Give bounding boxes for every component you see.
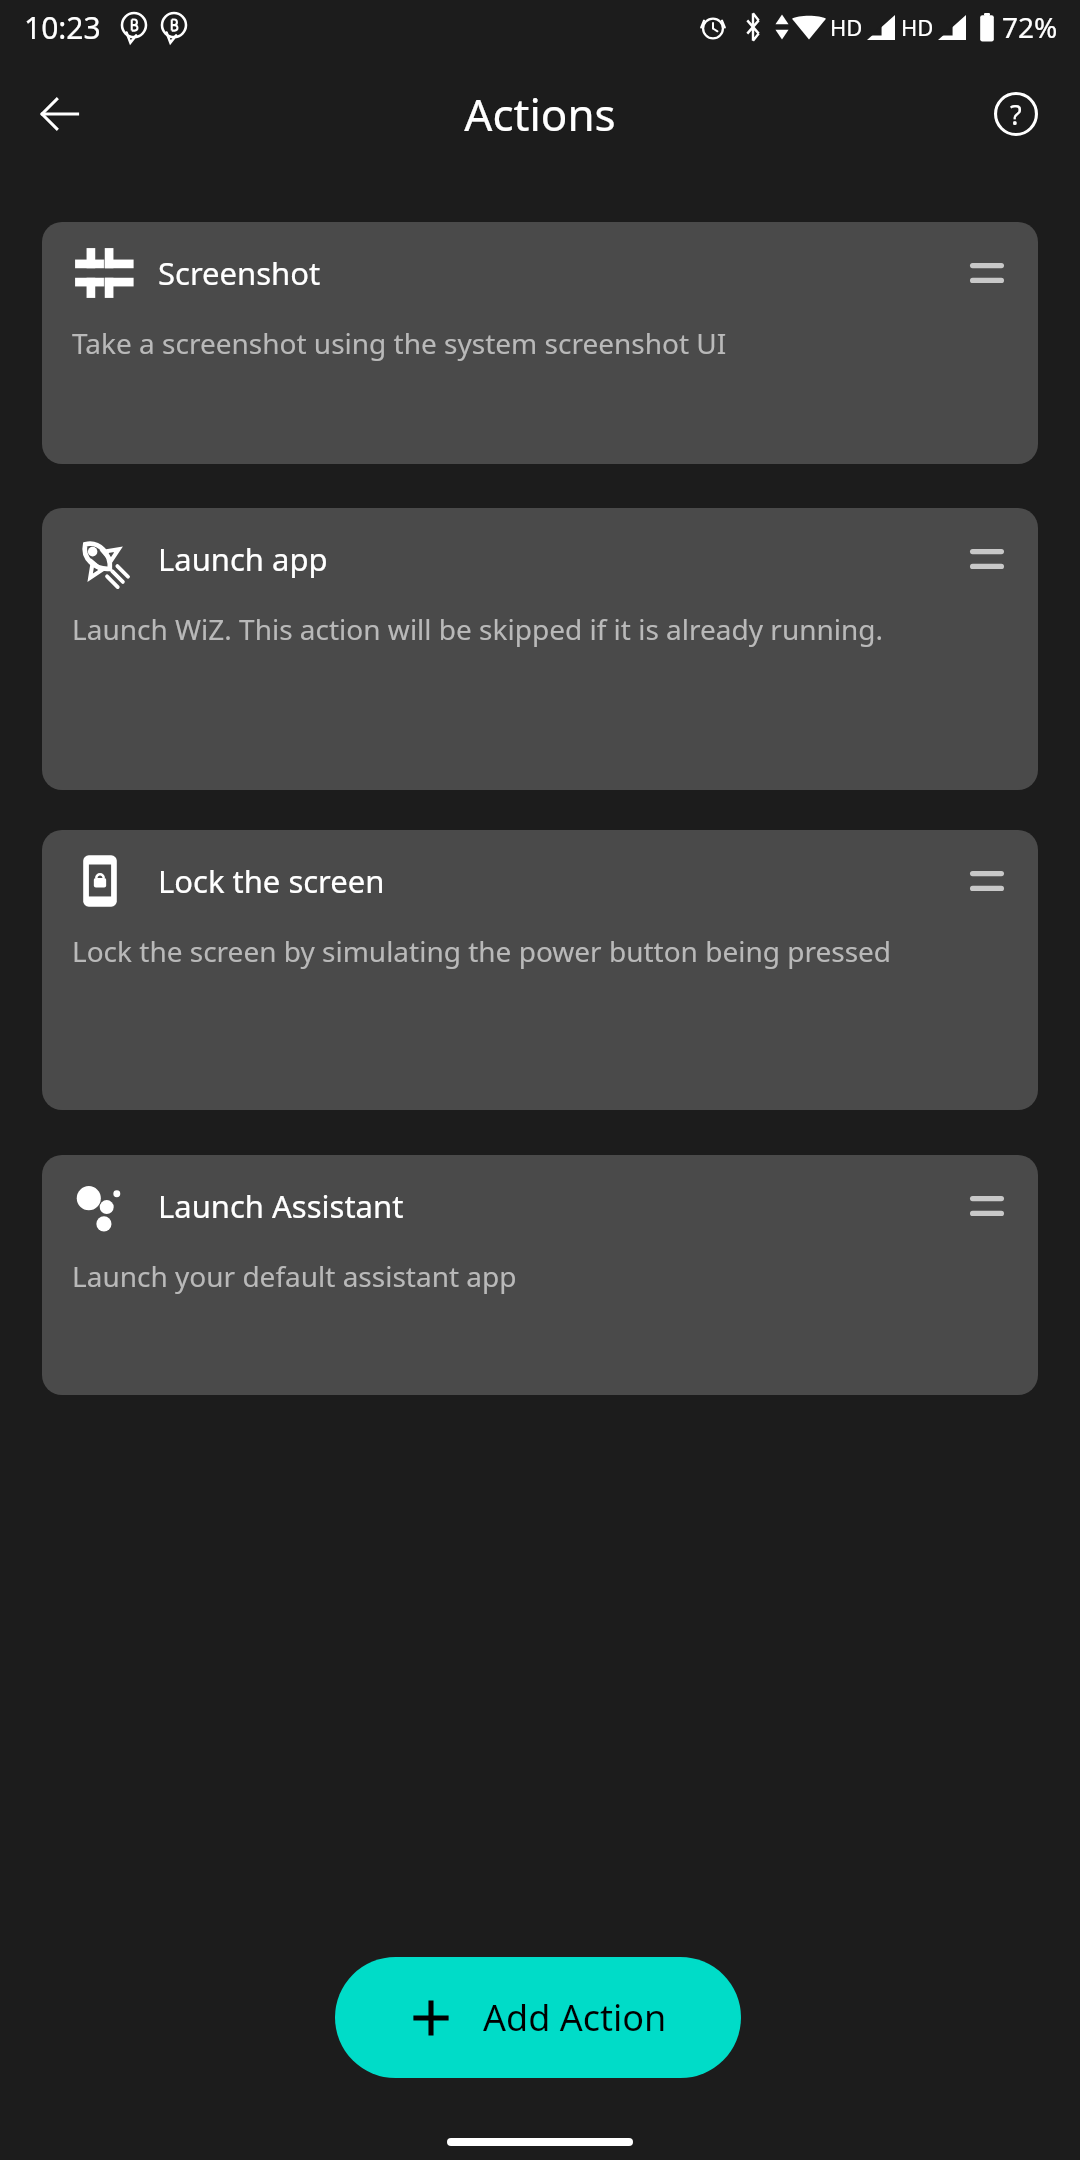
button[interactable]: Reorder Launch app [964,536,1010,582]
button[interactable]: Reorder Screenshot [964,250,1010,296]
staticText: HD [830,12,863,42]
staticText: Take a screenshot using the system scree… [72,324,727,362]
other: Lock the screen [72,853,128,909]
button[interactable]: Reorder Launch Assistant [964,1183,1010,1229]
staticText: 10:23 [24,7,101,48]
button[interactable]: Screenshot [42,222,1038,464]
staticText: Lock the screen by simulating the power … [72,932,892,970]
staticText: ? [1010,96,1022,133]
staticText: Screenshot [158,252,964,294]
staticText: Launch Assistant [158,1185,964,1227]
other: Launch Assistant [72,1178,128,1234]
staticText: Launch app [158,538,964,580]
staticText: Lock the screen [158,860,964,902]
button[interactable]: Back [22,76,98,152]
staticText: Launch your default assistant app [72,1257,517,1295]
button[interactable]: Add Action [335,1957,741,2078]
other: Launch app [72,531,128,587]
staticText: Actions [464,84,616,144]
staticText: HD [901,12,934,42]
staticText: Launch WiZ. This action will be skipped … [72,610,884,648]
button[interactable]: Help [978,76,1054,152]
staticText: 72% [1002,8,1058,46]
button[interactable]: Reorder Lock the screen [964,858,1010,904]
button[interactable]: Launch app [42,508,1038,790]
button[interactable]: Launch Assistant [42,1155,1038,1395]
button[interactable]: Lock the screen [42,830,1038,1110]
staticText: Add Action [483,1993,667,2042]
other: Screenshot [72,245,128,301]
